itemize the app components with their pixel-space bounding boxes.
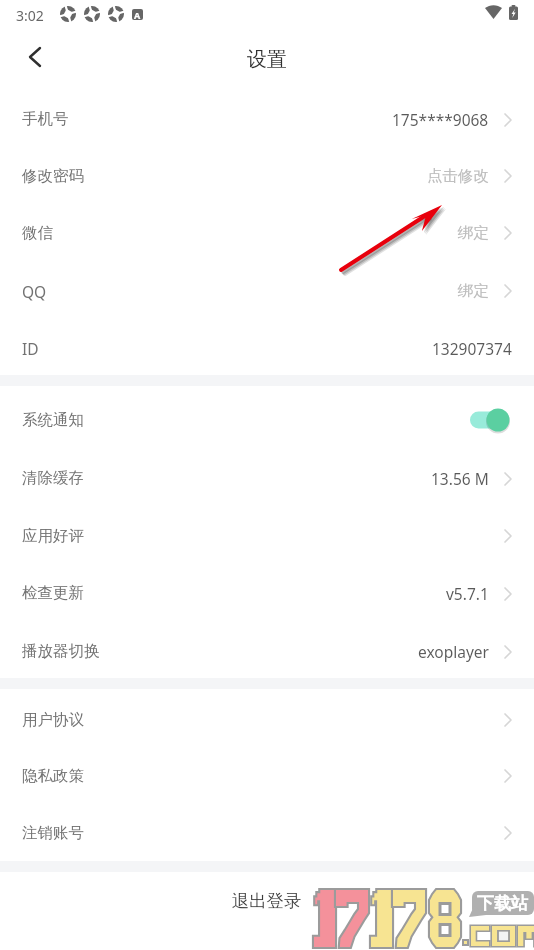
button[interactable]: QQ <box>0 262 534 320</box>
button[interactable]: 用户协议 <box>0 691 534 749</box>
staticText: 132907374 <box>432 338 512 359</box>
button[interactable]: 手机号 <box>0 90 534 148</box>
staticText: 手机号 <box>22 109 69 129</box>
staticText: 175****9068 <box>392 109 489 130</box>
button[interactable]: 修改密码 <box>0 147 534 205</box>
staticText: exoplayer <box>418 641 489 662</box>
button[interactable]: 返回 <box>12 34 58 80</box>
staticText: 下载站 <box>477 893 528 914</box>
button[interactable]: 系统通知 <box>465 405 511 435</box>
staticText: 修改密码 <box>22 166 84 186</box>
button[interactable]: 检查更新 <box>0 564 534 622</box>
staticText: 点击修改 <box>427 166 489 186</box>
button[interactable]: 注销账号 <box>0 804 534 862</box>
button[interactable]: 隐私政策 <box>0 747 534 805</box>
staticText: 清除缓存 <box>22 468 84 488</box>
staticText: 播放器切换 <box>22 641 100 661</box>
staticText: QQ <box>22 281 47 302</box>
button[interactable]: ID <box>0 319 534 377</box>
staticText: 应用好评 <box>22 526 84 546</box>
button[interactable]: 清除缓存 <box>0 449 534 507</box>
staticText: 退出登录 <box>232 890 302 912</box>
button[interactable]: 微信 <box>0 204 534 262</box>
staticText: ID <box>22 338 39 359</box>
button[interactable]: 播放器切换 <box>0 622 534 680</box>
staticText: v5.7.1 <box>446 583 489 604</box>
staticText: 注销账号 <box>22 823 84 843</box>
button[interactable]: 退出登录 <box>0 872 534 929</box>
staticText: 系统通知 <box>22 410 84 430</box>
staticText: 用户协议 <box>22 710 84 730</box>
staticText: 隐私政策 <box>22 766 84 786</box>
staticText: 绑定 <box>458 223 489 243</box>
staticText: 设置 <box>247 47 287 72</box>
staticText: 微信 <box>22 223 53 243</box>
staticText: 13.56 M <box>431 468 489 489</box>
staticText: A <box>134 9 141 20</box>
button[interactable]: 应用好评 <box>0 507 534 565</box>
staticText: 检查更新 <box>22 583 84 603</box>
staticText: 绑定 <box>458 281 489 301</box>
staticText: 3:02 <box>16 6 44 25</box>
